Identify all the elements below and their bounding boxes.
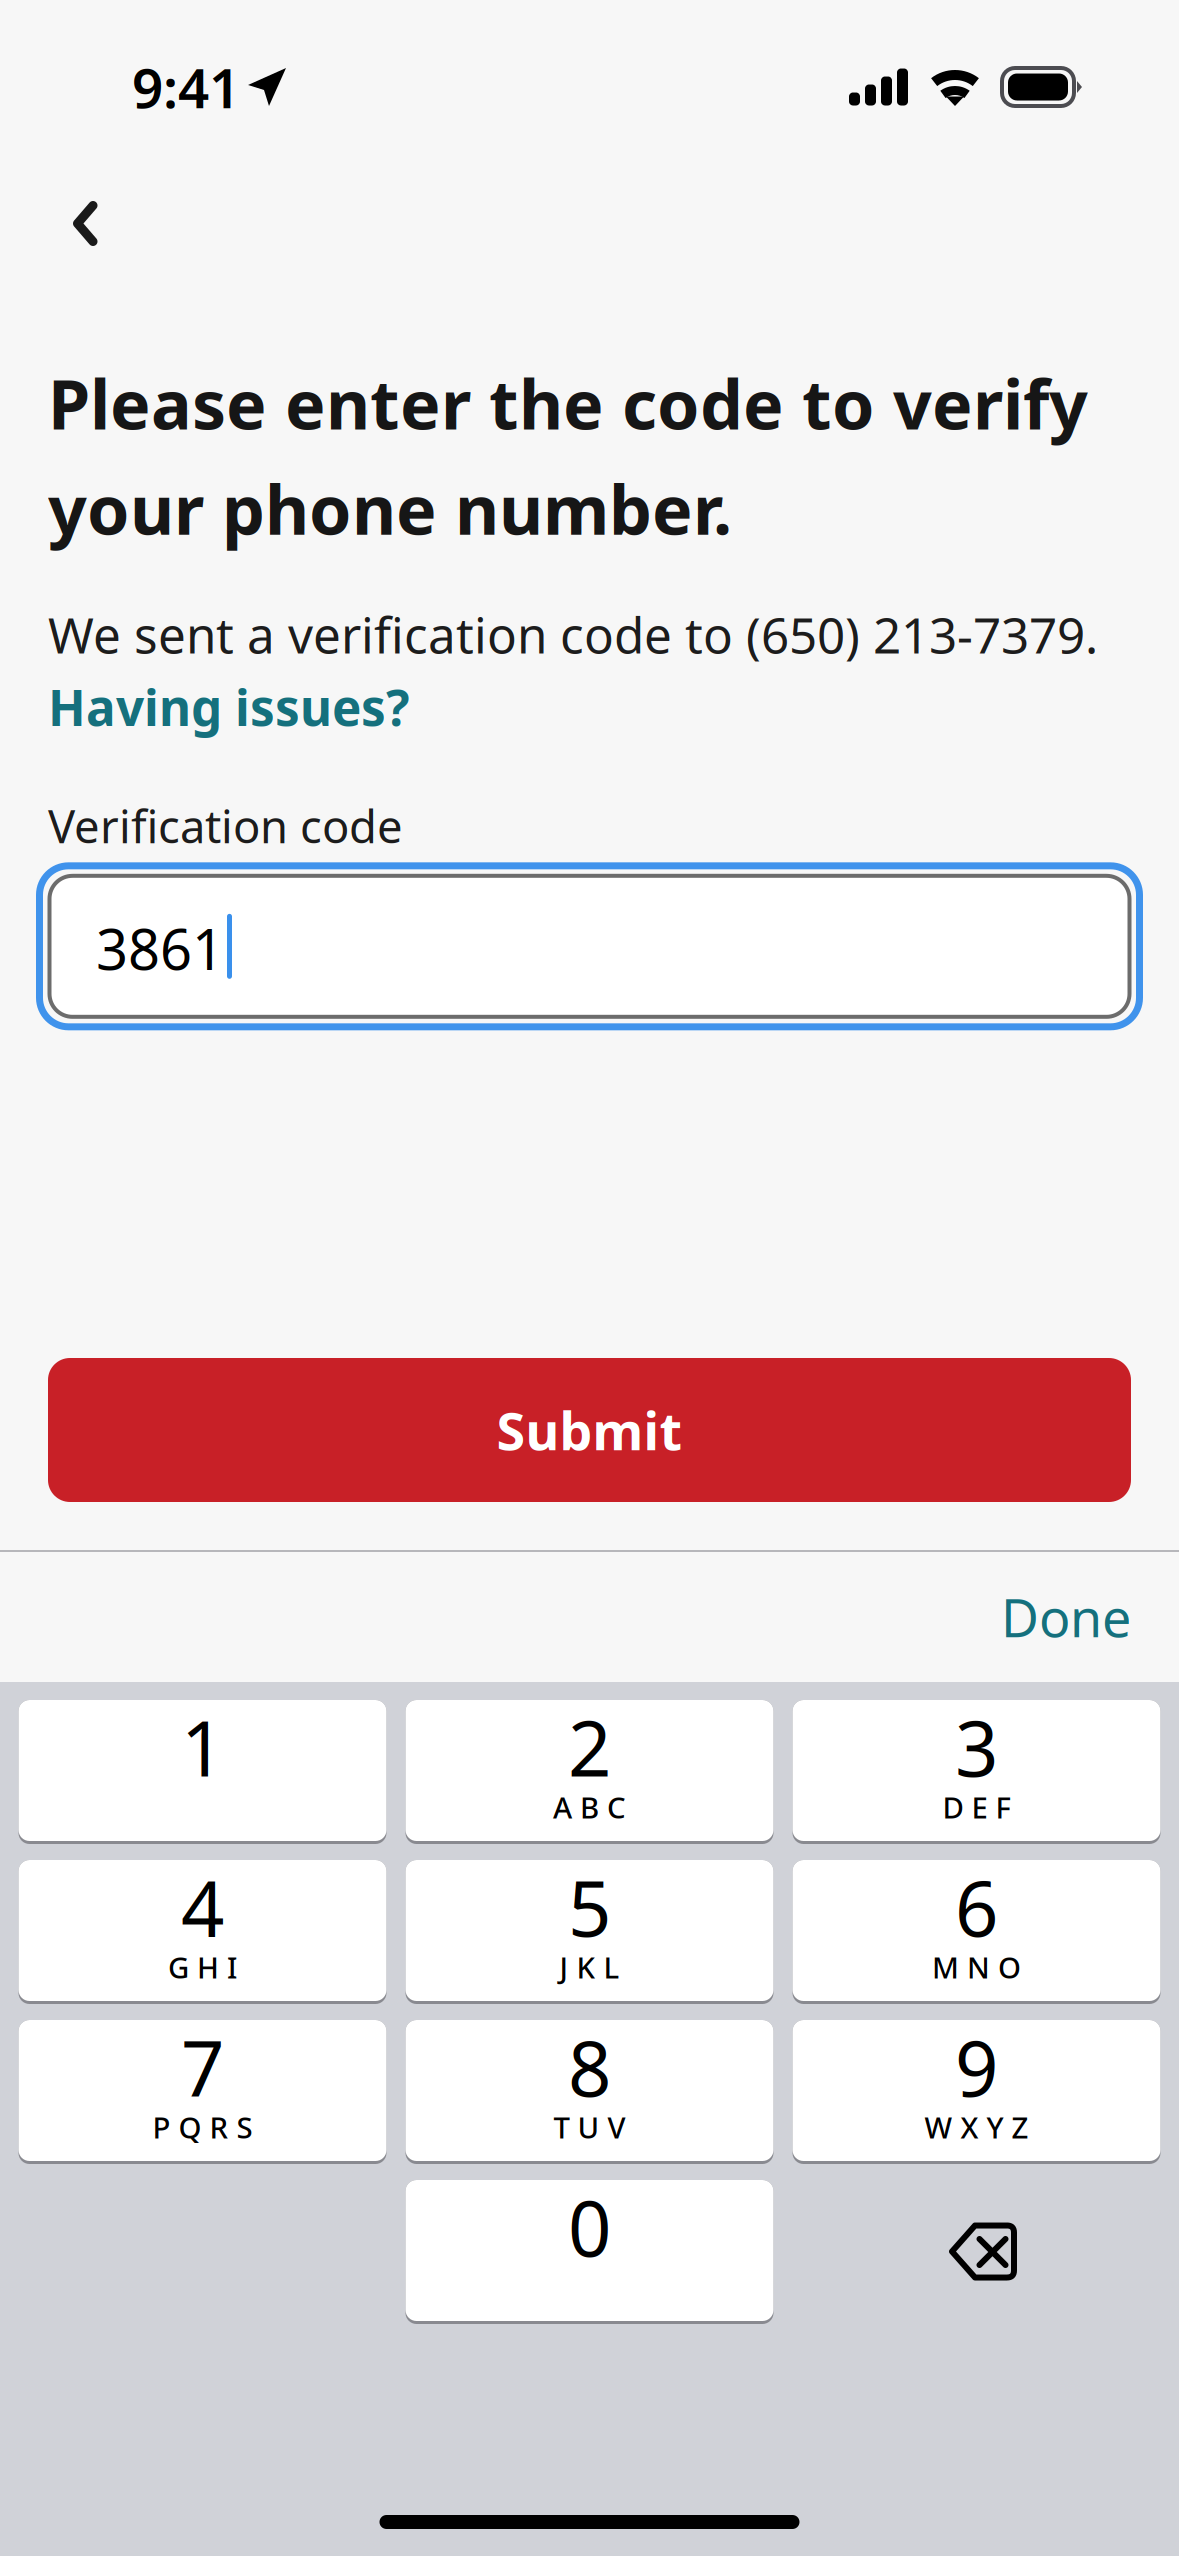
staticText: GHI — [168, 1947, 237, 1986]
staticText: WXYZ — [924, 2107, 1028, 2146]
button[interactable]: Delete — [792, 2180, 1160, 2324]
staticText: Done — [1001, 1582, 1131, 1652]
staticText: MNO — [932, 1947, 1021, 1986]
staticText: 9 — [955, 2016, 998, 2117]
button[interactable]: Having issues? — [48, 674, 410, 740]
staticText: 6 — [955, 1856, 998, 1957]
button[interactable]: 2 — [405, 1700, 773, 1844]
staticText: 5 — [568, 1856, 611, 1957]
staticText: 1 — [181, 1696, 224, 1797]
staticText: ABC — [553, 1787, 626, 1826]
button[interactable]: 3 — [792, 1700, 1160, 1844]
button[interactable]: Submit — [48, 1358, 1131, 1502]
button[interactable]: 6 — [792, 1860, 1160, 2004]
staticText: DEF — [942, 1787, 1010, 1826]
button[interactable]: 8 — [405, 2020, 773, 2164]
staticText: We sent a verification code to (650) 213… — [48, 602, 1098, 667]
staticText: JKL — [559, 1947, 619, 1986]
staticText: 4 — [181, 1856, 224, 1957]
button[interactable]: Done — [975, 1560, 1157, 1674]
staticText: Submit — [496, 1395, 682, 1465]
staticText: PQRS — [152, 2107, 252, 2146]
button[interactable]: 7 — [18, 2020, 386, 2164]
staticText: 3 — [955, 1696, 998, 1797]
button[interactable]: Back — [10, 168, 160, 278]
staticText: 8 — [568, 2016, 611, 2117]
staticText: TUV — [553, 2107, 625, 2146]
staticText: 0 — [568, 2176, 611, 2277]
staticText: Having issues? — [48, 674, 410, 740]
button[interactable]: 5 — [405, 1860, 773, 2004]
staticText: Please enter the code to verify your pho… — [48, 358, 1088, 554]
button[interactable]: 9 — [792, 2020, 1160, 2164]
staticText: 9:41 — [132, 51, 240, 123]
button[interactable]: 1 — [18, 1700, 386, 1844]
staticText: 7 — [181, 2016, 224, 2117]
staticText: Verification code — [48, 796, 403, 856]
button[interactable]: 4 — [18, 1860, 386, 2004]
staticText: 2 — [568, 1696, 611, 1797]
staticText: 3861 — [96, 911, 224, 985]
button[interactable]: 0 — [405, 2180, 773, 2324]
